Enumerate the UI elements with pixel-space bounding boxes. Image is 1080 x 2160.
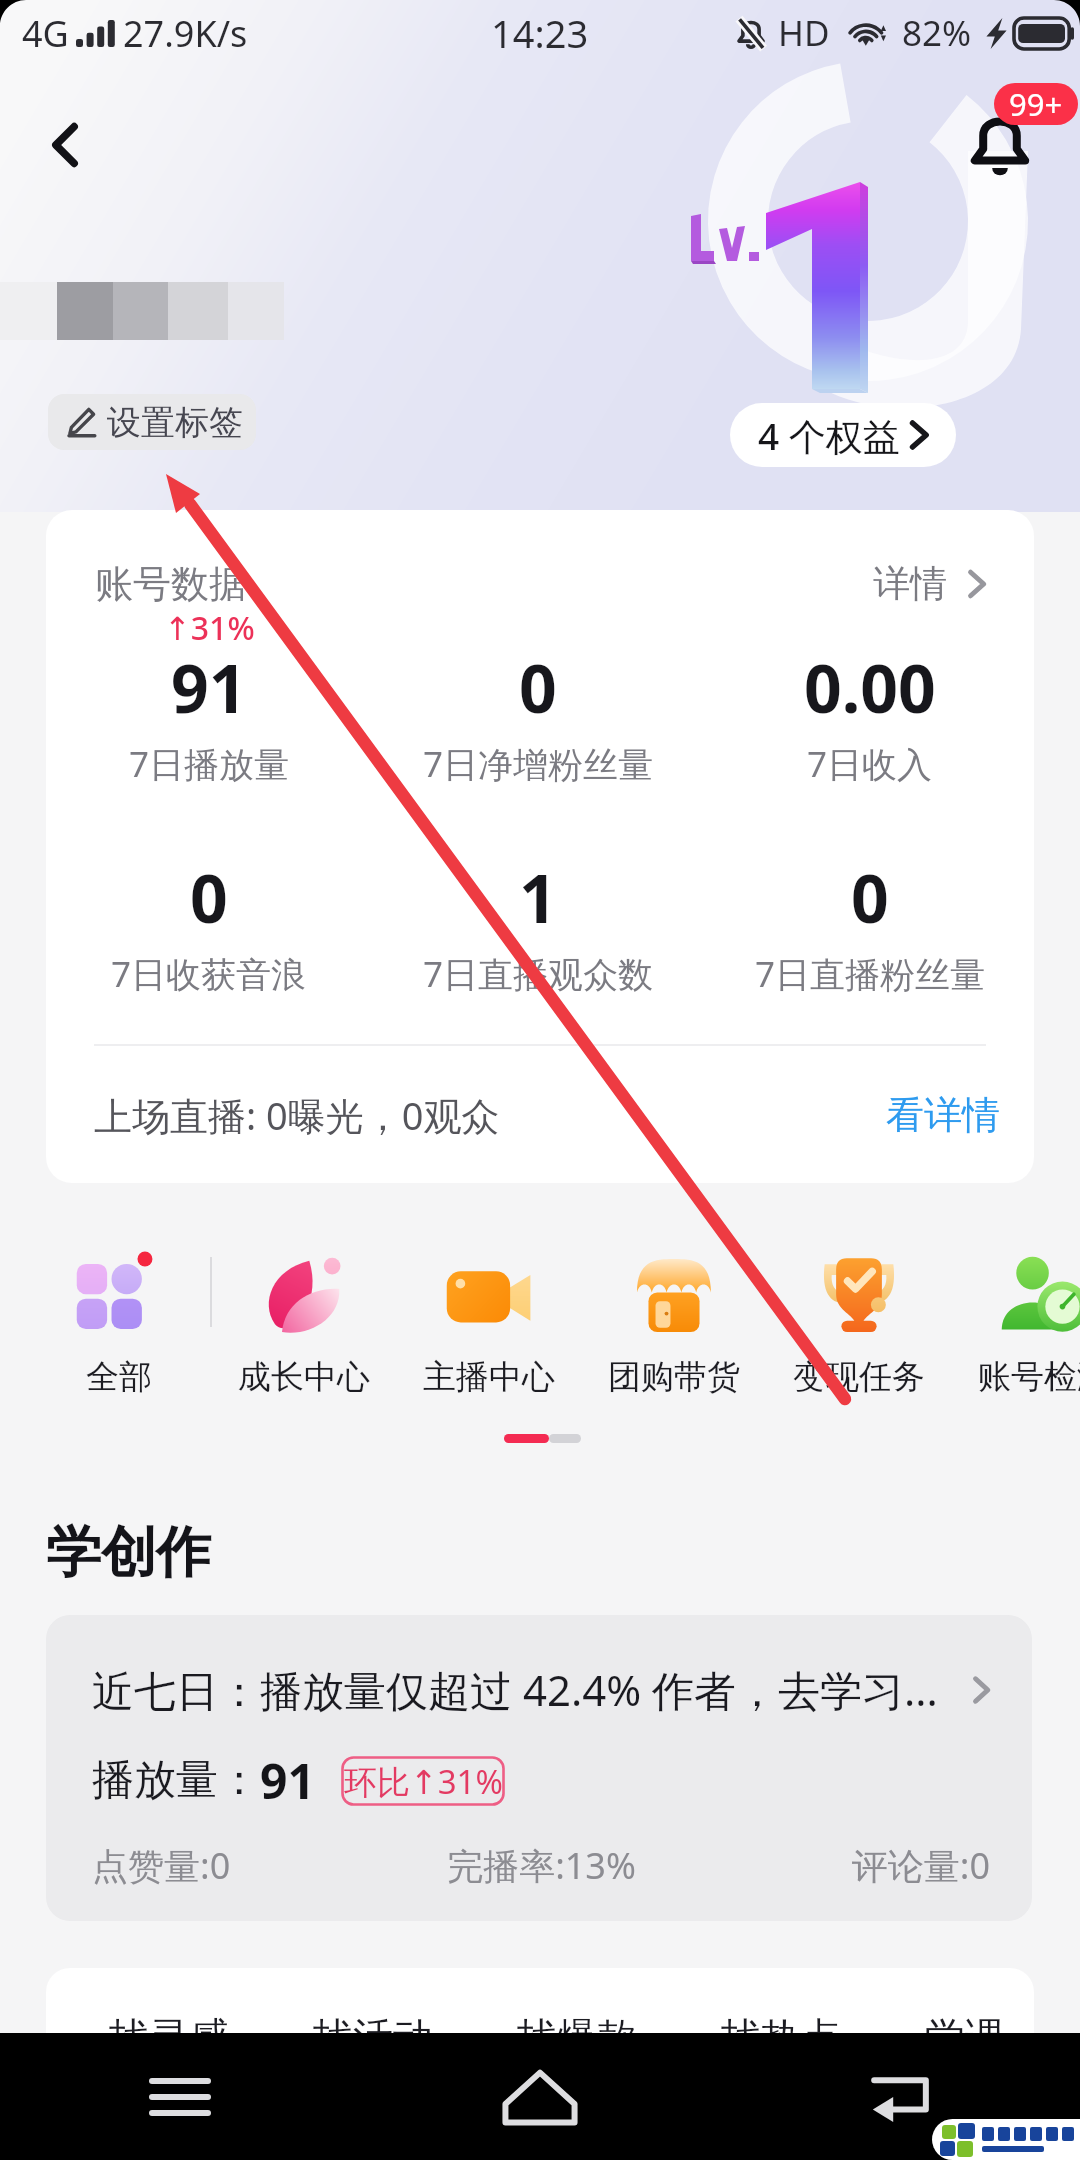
staticText: 7日直播观众数 xyxy=(423,950,654,998)
staticText: 团购带货 xyxy=(608,1356,740,1398)
staticText: 7日直播粉丝量 xyxy=(755,950,986,998)
button[interactable]: 成长中心 xyxy=(212,1252,396,1398)
staticText: 完播率:13% xyxy=(392,1841,691,1890)
staticText: 14:23 xyxy=(491,7,589,59)
staticText: 7日收入 xyxy=(807,740,933,788)
button[interactable]: 99+ notifications xyxy=(994,83,1078,125)
button[interactable]: Home xyxy=(360,2033,720,2160)
staticText: 4G xyxy=(22,9,69,58)
staticText: 0.00 xyxy=(804,642,936,732)
staticText: 账号数据 xyxy=(95,560,247,608)
button[interactable]: ↑31% xyxy=(46,606,374,806)
button[interactable]: 账号检测 xyxy=(952,1252,1080,1398)
staticText: 评论量:0 xyxy=(691,1841,990,1890)
button[interactable]: 主播中心 xyxy=(397,1252,581,1398)
button[interactable]: 近七日：播放量仅超过 42.4% 作者，去学习... xyxy=(46,1615,1032,1921)
staticText: 环比↑31% xyxy=(344,1759,503,1804)
staticText: 7日净增粉丝量 xyxy=(423,740,654,788)
staticText: 82% xyxy=(902,9,972,57)
staticText: 0 xyxy=(851,852,889,942)
staticText: 91 xyxy=(171,642,247,732)
button[interactable]: 设置标签 xyxy=(48,394,256,450)
button[interactable]: 团购带货 xyxy=(582,1252,766,1398)
staticText: 1 xyxy=(519,852,557,942)
staticText: 学课程 xyxy=(925,2012,1034,2116)
staticText: ↑31% xyxy=(164,606,255,642)
staticText: 0 xyxy=(190,852,228,942)
staticText: 找爆款 xyxy=(517,2012,637,2062)
button[interactable]: Recents xyxy=(0,2033,360,2160)
staticText: 4 个权益 xyxy=(758,410,900,461)
button[interactable]: Back xyxy=(20,100,110,190)
staticText: 账号检测 xyxy=(978,1356,1080,1398)
staticText: 7日播放量 xyxy=(129,740,290,788)
staticText: 成长中心 xyxy=(238,1356,370,1398)
staticText: HD xyxy=(778,9,830,57)
staticText: 详情 xyxy=(873,560,947,607)
staticText: 99+ xyxy=(1009,83,1063,125)
staticText: 27.9K/s xyxy=(123,9,248,58)
staticText: 找热点 xyxy=(721,2012,841,2062)
staticText: 学创作 xyxy=(46,1518,211,1587)
button[interactable]: 1 xyxy=(373,816,703,1016)
staticText: 7日收获音浪 xyxy=(111,950,307,998)
button[interactable]: 全部 xyxy=(27,1252,211,1398)
staticText: 0 xyxy=(519,642,557,732)
staticText: 上场直播: 0曝光，0观众 xyxy=(94,1089,500,1141)
staticText: 点赞量:0 xyxy=(92,1841,392,1890)
staticText: 播放量： xyxy=(92,1754,260,1807)
button[interactable]: 0 xyxy=(705,816,1034,1016)
button[interactable]: Notifications xyxy=(958,99,1042,181)
button[interactable]: 0.00 xyxy=(705,606,1034,806)
button[interactable]: 变现任务 xyxy=(767,1252,951,1398)
staticText: 看详情 xyxy=(886,1091,1000,1139)
staticText: 全部 xyxy=(86,1356,152,1398)
staticText: 主播中心 xyxy=(423,1356,555,1398)
staticText: 近七日：播放量仅超过 42.4% 作者，去学习... xyxy=(92,1661,938,1718)
button[interactable]: 4 个权益 xyxy=(730,403,956,467)
staticText: 91 xyxy=(260,1748,315,1813)
button[interactable]: 详情 xyxy=(863,556,995,611)
staticText: 找活动 xyxy=(313,2012,433,2062)
staticText: 变现任务 xyxy=(793,1356,925,1398)
button[interactable]: 0 xyxy=(46,816,374,1016)
button[interactable]: Back xyxy=(720,2033,1080,2160)
staticText: 找灵感 xyxy=(109,2012,229,2062)
staticText: 设置标签 xyxy=(107,401,243,444)
button[interactable]: 上场直播: 0曝光，0观众 xyxy=(46,1046,1034,1183)
button[interactable]: 0 xyxy=(373,606,703,806)
button[interactable]: 找灵感 xyxy=(46,1968,1034,2128)
